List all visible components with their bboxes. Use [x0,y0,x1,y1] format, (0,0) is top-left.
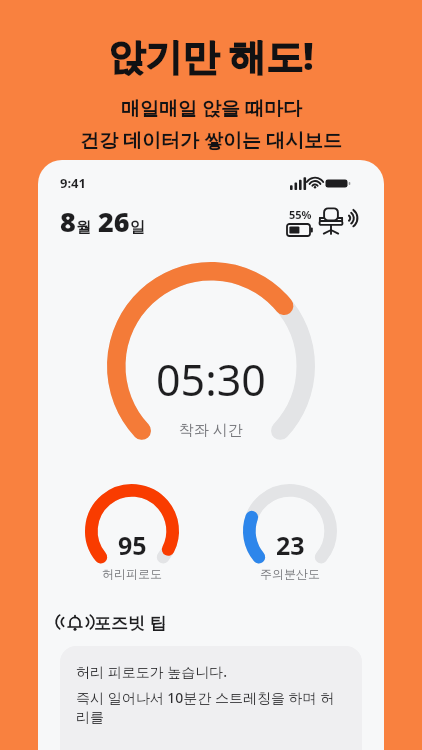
staticText: 건강 데이터가 쌓이는 대시보드 [80,127,342,153]
staticText: 8 [60,203,76,240]
button[interactable]: Notification [60,611,167,634]
button[interactable]: 허리 피로도가 높습니다. [60,646,362,750]
staticText: 05:30 [156,350,266,409]
staticText: 매일매일 앉을 때마다 [121,95,302,121]
staticText: 23 [276,528,305,562]
staticText: 허리 피로도가 높습니다. [76,662,228,681]
staticText: 즉시 일어나서 10분간 스트레칭을 하며 허리를 [76,688,348,726]
staticText: 55% [289,207,312,222]
staticText: 26 [98,203,130,240]
staticText: 95 [118,528,147,562]
staticText: 주의분산도 [260,566,320,581]
staticText: 9:41 [60,174,86,192]
staticText: 일 [130,218,145,237]
staticText: 월 [76,218,91,237]
button[interactable]: Chair battery status [283,202,366,240]
staticText: 허리피로도 [102,566,162,581]
staticText: 포즈빗 팁 [94,611,167,634]
staticText: 앉기만 해도! [108,30,314,81]
other: Notification [60,613,90,633]
staticText: 착좌 시간 [179,419,243,439]
button[interactable]: 23 [225,484,355,581]
button[interactable]: 95 [67,484,197,581]
